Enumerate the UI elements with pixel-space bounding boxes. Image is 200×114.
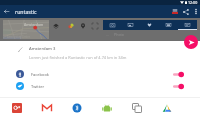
staticText: 12:00 [188,0,198,5]
button[interactable]: Layers [50,20,62,32]
button[interactable]: Gallery [121,20,140,30]
button[interactable]: Photos [159,20,178,30]
button[interactable]: More options [191,6,200,17]
button[interactable]: Gmail [36,98,58,114]
button[interactable]: Location [77,20,89,32]
staticText: Twitter [31,84,45,89]
button[interactable]: Expand [89,20,101,32]
button[interactable]: Copy to clipboard [126,98,148,114]
button[interactable]: Send [184,35,198,49]
button[interactable]: Facebook [0,68,200,80]
staticText: Amsterdam Centre [7,35,31,39]
button[interactable]: Google Drive [156,98,178,114]
staticText: Amsterdam [24,22,44,27]
button[interactable]: Android Beam [96,98,118,114]
staticText: runtastic [15,8,37,15]
staticText: Photo [114,32,125,37]
button[interactable]: Favorites [140,20,159,30]
button[interactable]: Bluetooth [66,98,88,114]
button[interactable]: Twitter [0,80,200,92]
button[interactable]: Amsterdam 3 [0,44,200,61]
staticText: Lorem just finished a Runtastic run of 4… [29,55,127,60]
staticText: Amsterdam 3 [29,46,56,52]
button[interactable]: Camera [103,20,121,30]
button[interactable]: Share [180,6,191,17]
button[interactable]: Stickers [178,20,197,30]
button[interactable]: Google Plus [6,98,28,114]
button[interactable]: Sticker [65,20,77,32]
button[interactable]: Back [1,6,12,17]
button[interactable]: Notifications [169,6,180,17]
staticText: Facebook [31,72,49,77]
